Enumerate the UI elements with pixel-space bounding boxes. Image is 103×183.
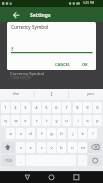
button[interactable]: l [88, 128, 97, 139]
button[interactable]: k [78, 128, 87, 139]
staticText: v [50, 145, 53, 150]
button[interactable]: 4 [32, 102, 41, 113]
staticText: . [82, 158, 84, 163]
button[interactable] [0, 7, 103, 22]
button[interactable]: 5 [42, 102, 51, 113]
button[interactable] [88, 142, 102, 153]
staticText: 9 [86, 105, 89, 110]
staticText: a [9, 131, 12, 136]
staticText: 2 [14, 105, 17, 110]
button[interactable]: 1 [1, 102, 10, 113]
button[interactable]: s [16, 128, 25, 139]
button[interactable]: i [73, 115, 82, 126]
button[interactable]: , [16, 155, 25, 166]
button[interactable]: 7 [62, 102, 71, 113]
staticText: 8 [76, 105, 79, 110]
button[interactable]: z [16, 142, 25, 153]
button[interactable]: 2 [11, 102, 20, 113]
button[interactable]: 8 [73, 102, 82, 113]
button[interactable]: ?123 [1, 155, 15, 166]
staticText: 6 [55, 105, 58, 110]
button[interactable]: 9 [83, 102, 92, 113]
button[interactable]: h [57, 128, 66, 139]
button[interactable]: c [37, 142, 46, 153]
staticText: w [14, 118, 18, 123]
staticText: g [50, 131, 53, 136]
staticText: q [4, 118, 7, 123]
staticText: z [20, 145, 22, 150]
button[interactable]: u [62, 115, 71, 126]
button[interactable]: w [11, 115, 20, 126]
staticText: 7 [65, 105, 68, 110]
staticText: the [13, 91, 20, 96]
staticText: o [86, 118, 89, 123]
staticText: , [20, 158, 22, 163]
staticText: b [60, 145, 63, 150]
staticText: 1 [4, 105, 7, 110]
button[interactable]: 6 [52, 102, 61, 113]
button[interactable]: q [1, 115, 10, 126]
button[interactable]: g [47, 128, 56, 139]
staticText: ?123 [5, 159, 12, 163]
button[interactable]: p [93, 115, 102, 126]
button[interactable]: 3 [21, 102, 30, 113]
staticText: k [81, 131, 84, 136]
staticText: r [36, 118, 38, 123]
button[interactable] [79, 60, 90, 69]
staticText: 4 [35, 105, 38, 110]
button[interactable]: t [42, 115, 51, 126]
staticText: n [71, 145, 74, 150]
button[interactable]: b [57, 142, 66, 153]
staticText: ₹ [11, 45, 14, 52]
button[interactable]: y [52, 115, 61, 126]
button[interactable]: o [83, 115, 92, 126]
staticText: CANCEL [55, 62, 71, 67]
button[interactable]: j [68, 128, 77, 139]
staticText: p [96, 118, 99, 123]
staticText: Currency Symbol [10, 70, 45, 76]
button[interactable] [7, 22, 96, 70]
staticText: 5 [45, 105, 48, 110]
staticText: Currency Symbol [11, 24, 49, 30]
staticText: 0 [96, 105, 99, 110]
staticText: c [41, 145, 43, 150]
button[interactable]: n [68, 142, 77, 153]
button[interactable]: e [21, 115, 30, 126]
staticText: u [65, 118, 68, 123]
staticText: f [41, 131, 43, 136]
staticText: y [55, 118, 58, 123]
staticText: i [77, 118, 79, 123]
staticText: d [29, 131, 32, 136]
button[interactable] [88, 155, 102, 166]
button[interactable]: a [6, 128, 15, 139]
staticText: 5:29 PM [83, 1, 95, 5]
staticText: OK [82, 62, 88, 67]
staticText: Settings [30, 12, 51, 19]
button[interactable]: v [47, 142, 56, 153]
staticText: 1,000.000,00 [10, 75, 32, 80]
button[interactable] [1, 142, 15, 153]
staticText: e [24, 118, 27, 123]
staticText: l [92, 131, 94, 136]
staticText: h [60, 131, 63, 136]
staticText: t [46, 118, 48, 123]
button[interactable]: x [26, 142, 35, 153]
button[interactable]: d [26, 128, 35, 139]
button[interactable] [52, 60, 72, 69]
staticText: m [81, 145, 85, 150]
staticText: 3 [24, 105, 27, 110]
staticText: I [51, 91, 53, 97]
staticText: x [29, 145, 32, 150]
button[interactable]: 0 [93, 102, 102, 113]
button[interactable]: m [78, 142, 87, 153]
button[interactable]: f [37, 128, 46, 139]
staticText: j [72, 131, 74, 136]
staticText: s [20, 131, 22, 136]
staticText: you [87, 91, 94, 96]
button[interactable]: r [32, 115, 41, 126]
